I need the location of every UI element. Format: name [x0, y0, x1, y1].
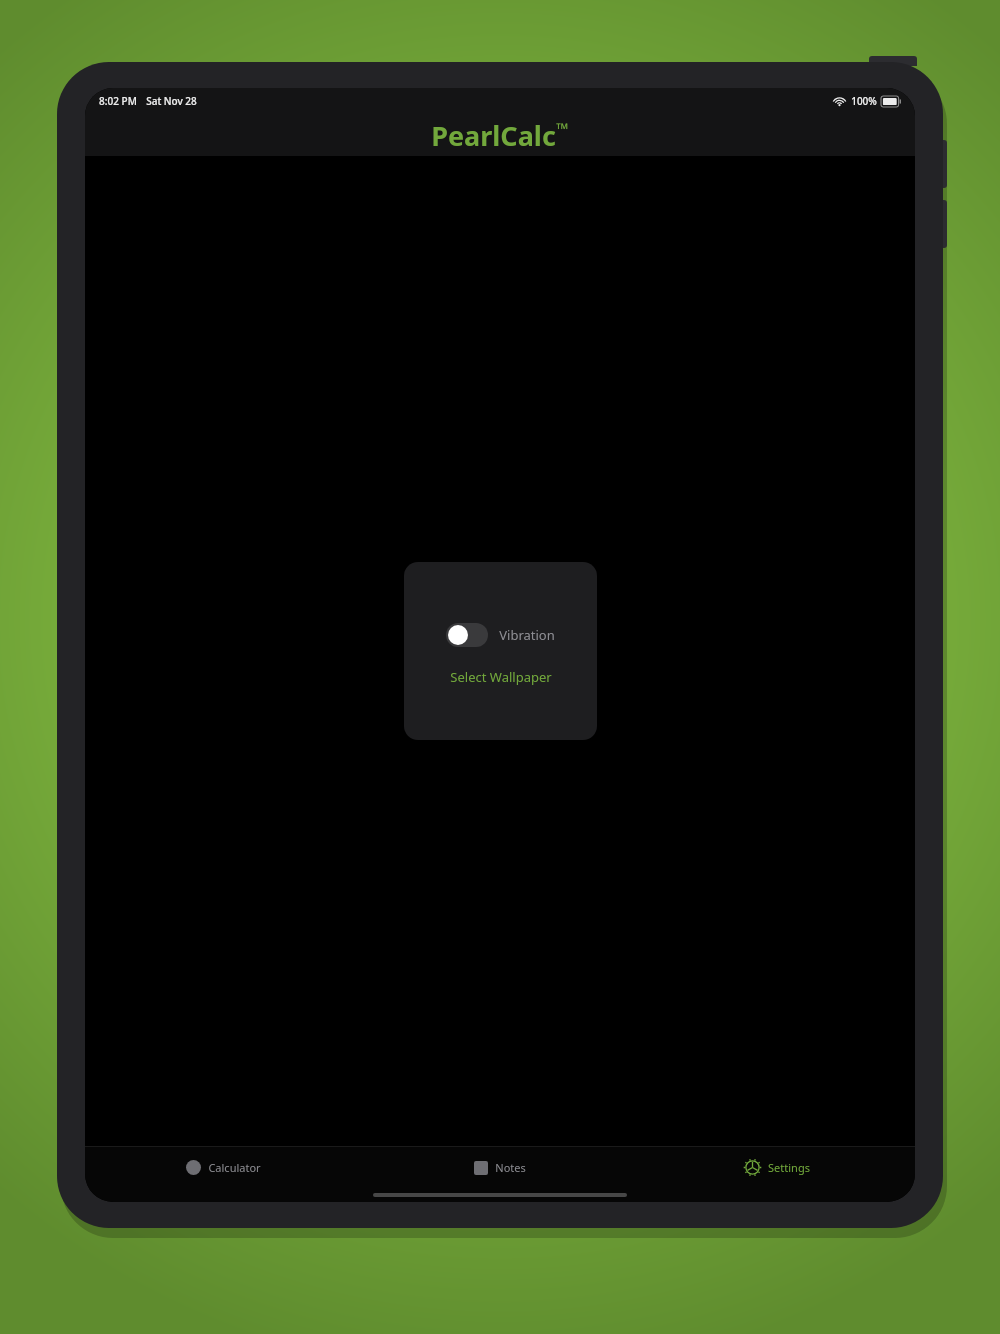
staticText: Select Wallpaper	[450, 668, 552, 686]
staticText: 8:02 PM	[99, 94, 137, 108]
button[interactable]: Select Wallpaper	[442, 664, 560, 690]
staticText: Settings	[768, 1160, 810, 1175]
button[interactable]: Calculator	[85, 1147, 361, 1188]
staticText: Calculator	[208, 1160, 261, 1175]
staticText: 100%	[851, 94, 877, 108]
staticText: ™	[556, 118, 569, 140]
staticText: PearlCalc	[431, 117, 556, 154]
button[interactable]: Notes	[361, 1147, 638, 1188]
other: Wi-Fi	[833, 95, 846, 108]
staticText: Sat Nov 28	[146, 94, 197, 108]
staticText: Vibration	[499, 626, 555, 644]
button[interactable]: Vibration	[442, 620, 559, 650]
button[interactable]: Settings	[638, 1147, 915, 1188]
staticText: Notes	[495, 1160, 526, 1175]
